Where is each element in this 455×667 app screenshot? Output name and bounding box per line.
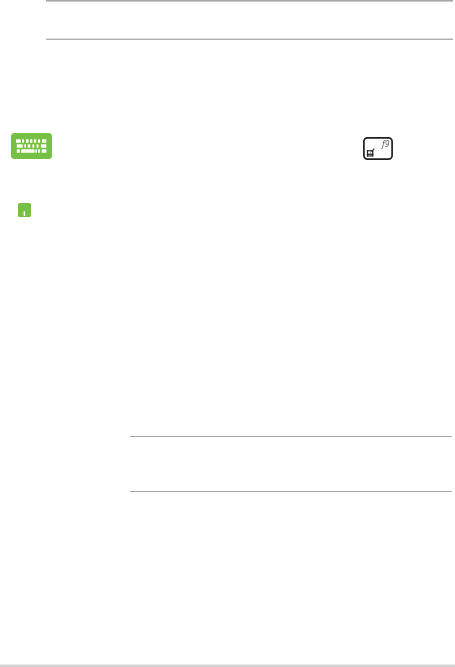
button[interactable]: f9 key	[363, 137, 393, 160]
button[interactable]: Touchpad	[18, 203, 31, 217]
button[interactable]: Keyboard	[11, 133, 52, 159]
staticText: f9	[382, 138, 390, 150]
